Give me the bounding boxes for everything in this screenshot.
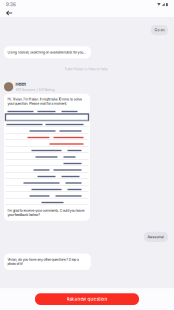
- staticText: Using Toolset, searching on available tu…: [7, 50, 86, 54]
- staticText: Helen: [16, 82, 26, 87]
- button[interactable]: Ask a new question: [35, 293, 139, 305]
- button[interactable]: Awesome!: [144, 232, 168, 242]
- button[interactable]: Back: [0, 9, 19, 17]
- staticText: Hi, Vivian. I'm Helen. It might take 10 …: [7, 97, 82, 105]
- staticText: Go on: [154, 28, 164, 32]
- staticText: 501 Answers | 4.9 Rating: [16, 87, 55, 92]
- staticText: 9:36: [6, 2, 16, 7]
- staticText: Tutor Helen is here to help: [64, 67, 107, 71]
- staticText: Ask a new question: [66, 296, 107, 302]
- staticText: Vivian, do you have any other questions?…: [7, 257, 79, 266]
- button[interactable]: Go on: [151, 25, 168, 35]
- staticText: Awesome!: [147, 235, 164, 239]
- staticText: I'm glad to receive your comments. Could…: [7, 208, 85, 217]
